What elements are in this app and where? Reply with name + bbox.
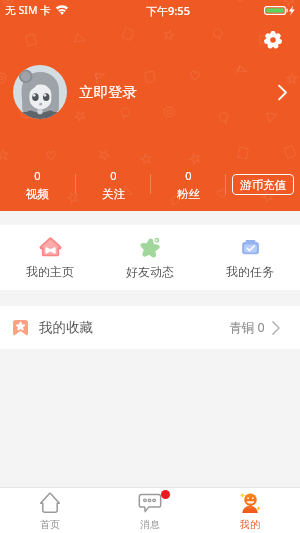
staticText: 无 SIM 卡 bbox=[5, 3, 51, 17]
button[interactable]: 我的任务 bbox=[200, 225, 300, 290]
button[interactable]: 立即登录 bbox=[0, 64, 300, 120]
staticText: 消息 bbox=[140, 518, 160, 531]
button[interactable]: 消息 bbox=[100, 488, 200, 533]
button[interactable]: 我的收藏 bbox=[0, 306, 300, 349]
button[interactable]: 我的主页 bbox=[0, 225, 100, 290]
button[interactable]: 我的 bbox=[200, 488, 300, 533]
staticText: 下午9:55 bbox=[146, 3, 190, 18]
staticText: 我的 bbox=[240, 518, 260, 531]
button[interactable]: 好友动态 bbox=[100, 225, 200, 290]
staticText: 立即登录 bbox=[79, 83, 137, 101]
staticText: 我的收藏 bbox=[39, 319, 93, 336]
button[interactable]: 0 bbox=[0, 162, 75, 206]
staticText: 好友动态 bbox=[126, 264, 174, 279]
staticText: 0 bbox=[34, 168, 41, 183]
button[interactable]: Settings bbox=[258, 25, 288, 55]
staticText: 关注 bbox=[102, 187, 125, 201]
staticText: 游币充值 bbox=[240, 178, 286, 192]
button[interactable]: 游币充值 bbox=[232, 174, 294, 195]
staticText: 我的主页 bbox=[26, 264, 74, 279]
staticText: 我的任务 bbox=[226, 264, 274, 279]
staticText: 粉丝 bbox=[177, 187, 200, 201]
button[interactable]: 0 bbox=[151, 162, 225, 206]
staticText: 视频 bbox=[26, 187, 49, 201]
staticText: 青铜 0 bbox=[229, 319, 265, 336]
staticText: 0 bbox=[185, 168, 192, 183]
staticText: 首页 bbox=[40, 518, 60, 531]
button[interactable]: 0 bbox=[76, 162, 150, 206]
staticText: 0 bbox=[110, 168, 117, 183]
button[interactable]: 首页 bbox=[0, 488, 100, 533]
